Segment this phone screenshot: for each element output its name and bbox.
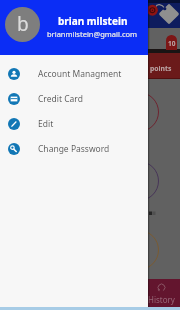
staticText: Edit <box>38 118 54 130</box>
button[interactable]: Change Password <box>0 136 148 161</box>
staticText: 10 <box>168 39 176 48</box>
staticText: Credit Card <box>38 93 83 105</box>
button[interactable]: Credit Card <box>0 86 148 111</box>
staticText: brianmilstein@gmail.com <box>47 29 138 39</box>
button[interactable]: History <box>145 283 177 305</box>
button[interactable]: Account Managment <box>0 61 148 86</box>
staticText: brian milstein <box>58 14 128 28</box>
button[interactable]: Offers <box>147 3 180 28</box>
staticText: Change Password <box>38 143 110 155</box>
staticText: Account Managment <box>38 68 122 80</box>
button[interactable]: Edit <box>0 111 148 136</box>
staticText: History <box>148 294 175 305</box>
staticText: points <box>150 64 180 73</box>
staticText: b <box>17 11 29 37</box>
